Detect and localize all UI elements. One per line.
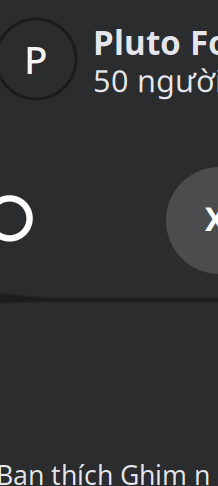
staticText: 50 người (93, 60, 218, 101)
staticText: X (204, 196, 218, 241)
staticText: P (24, 33, 48, 85)
staticText: Pluto Fox (93, 20, 218, 64)
staticText: Bạn thích Ghim n (0, 457, 210, 486)
